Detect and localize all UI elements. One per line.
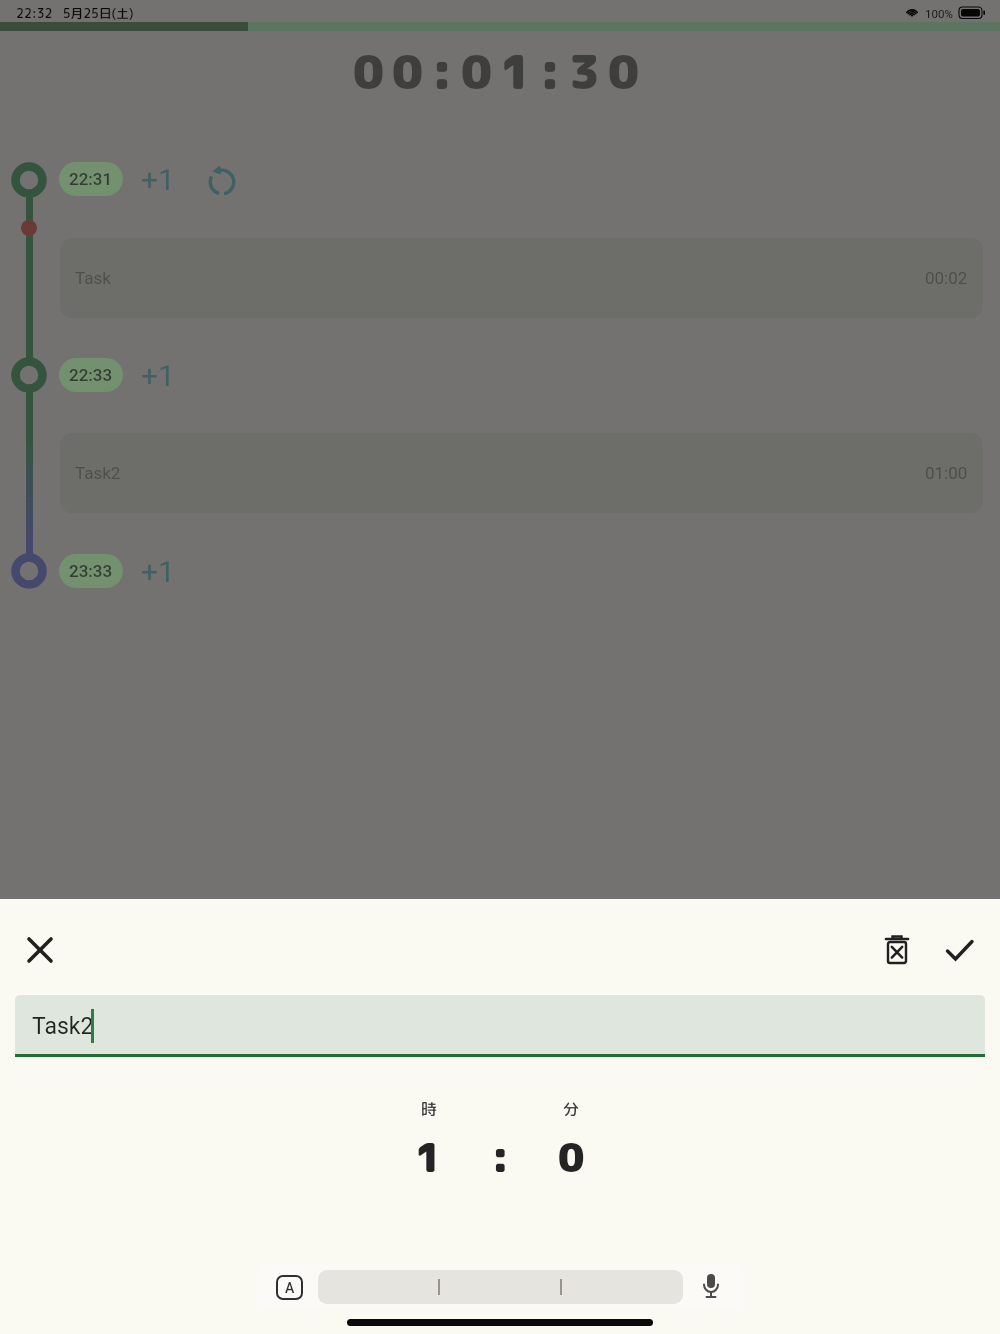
button[interactable] [879, 932, 915, 968]
staticText: Task2 [75, 463, 121, 483]
button[interactable] [205, 164, 239, 198]
staticText: 22:32 5月25日(土) [16, 5, 134, 22]
staticText: +1 [141, 554, 175, 589]
button[interactable]: 22:31 [59, 162, 123, 196]
button[interactable]: Task2 [15, 995, 985, 1057]
staticText: 00:02 [925, 268, 968, 288]
button[interactable] [22, 932, 58, 968]
staticText: 0 [558, 1129, 585, 1185]
button[interactable] [942, 932, 978, 968]
staticText: 100% [925, 7, 953, 20]
button[interactable]: +1 [138, 159, 178, 199]
staticText: 00:01:30 [353, 38, 647, 98]
staticText: 分 [563, 1098, 580, 1120]
button[interactable]: A [276, 1275, 303, 1300]
button[interactable]: 22:33 [59, 358, 123, 392]
button[interactable] [696, 1272, 726, 1302]
staticText: Task2 [32, 1013, 94, 1040]
staticText: 23:33 [69, 561, 113, 581]
button[interactable]: +1 [138, 355, 178, 395]
button[interactable]: 23:33 [59, 554, 123, 588]
staticText: Task [75, 268, 111, 288]
button[interactable]: +1 [138, 551, 178, 591]
staticText: +1 [141, 358, 175, 393]
button[interactable]: 1 [378, 1129, 478, 1185]
staticText: 22:31 [69, 169, 113, 189]
button[interactable]: 0 [521, 1129, 621, 1185]
staticText: 1 [415, 1129, 442, 1185]
button[interactable] [318, 1270, 683, 1304]
staticText: : [491, 1129, 510, 1185]
staticText: 時 [421, 1098, 438, 1120]
staticText: A [285, 1280, 295, 1296]
staticText: +1 [141, 162, 175, 197]
staticText: 22:33 [69, 365, 113, 385]
staticText: 01:00 [925, 463, 968, 483]
